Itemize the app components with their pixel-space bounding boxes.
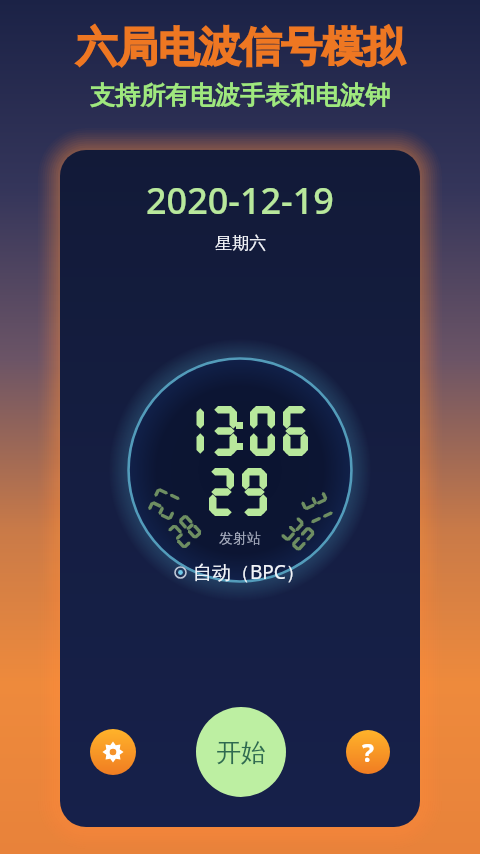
button[interactable]: 自动（BPC） — [169, 557, 311, 587]
staticText: 发射站 — [219, 530, 261, 548]
button[interactable]: Help — [346, 730, 390, 774]
staticText: ? — [362, 735, 374, 769]
button[interactable]: 开始 — [196, 707, 286, 797]
staticText: 2020-12-19 — [146, 176, 334, 225]
staticText: 开始 — [216, 737, 266, 768]
staticText: 支持所有电波手表和电波钟 — [90, 80, 390, 111]
button[interactable]: Settings — [90, 729, 136, 775]
staticText: 自动（BPC） — [193, 559, 305, 585]
staticText: 六局电波信号模拟 — [76, 22, 404, 74]
staticText: 星期六 — [215, 233, 266, 254]
